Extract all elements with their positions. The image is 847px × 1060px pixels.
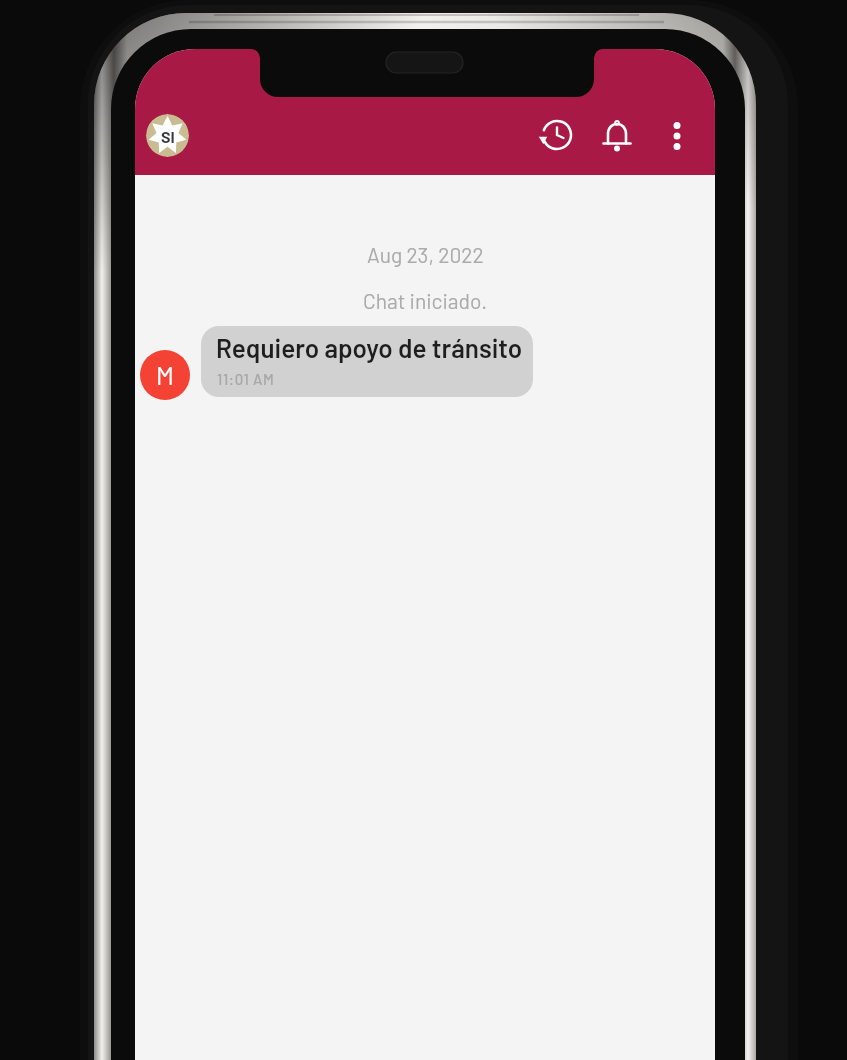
button[interactable] <box>665 113 689 159</box>
button[interactable] <box>599 117 635 153</box>
staticText: M <box>156 360 174 390</box>
button[interactable]: Requiero apoyo de tránsito <box>201 326 533 397</box>
button[interactable]: M <box>140 350 190 400</box>
staticText: 11:01 AM <box>217 370 275 388</box>
staticText: SI <box>161 127 175 146</box>
staticText: Aug 23, 2022 <box>367 242 484 267</box>
button[interactable]: SI <box>146 114 189 157</box>
button[interactable] <box>539 117 575 153</box>
staticText: Requiero apoyo de tránsito <box>216 332 523 363</box>
staticText: Chat iniciado. <box>363 288 488 313</box>
